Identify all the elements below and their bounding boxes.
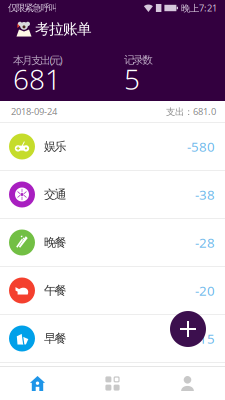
staticText: 考拉账单 [35,20,92,38]
staticText: 仅限紧急呼叫 [8,2,57,14]
staticText: 午餐 [44,283,67,298]
staticText: -38 [195,186,215,203]
staticText: 娱乐 [44,139,67,154]
button[interactable]: 早餐 [0,315,225,363]
staticText: 5 [124,60,140,98]
button[interactable]: 我的 [150,367,225,400]
staticText: -28 [195,234,215,251]
staticText: 本月支出(元) [13,53,63,67]
staticText: -15 [195,330,215,347]
button[interactable]: 首页 [0,367,75,400]
staticText: 早餐 [44,331,67,346]
staticText: 交通 [44,187,67,202]
button[interactable]: 晚餐 [0,219,225,267]
button[interactable]: 交通 [0,171,225,219]
staticText: 2018-09-24 [11,105,57,118]
staticText: -20 [195,282,215,299]
staticText: 晚上7:21 [181,2,217,14]
button[interactable]: 添加记账 [170,311,206,347]
button[interactable]: 娱乐 [0,123,225,171]
staticText: 支出：681.0 [166,105,216,118]
staticText: 晚餐 [44,235,67,250]
staticText: -580 [187,138,215,155]
staticText: 记录数 [124,53,153,66]
button[interactable]: 分类 [75,367,150,400]
button[interactable]: 午餐 [0,267,225,315]
staticText: 681 [13,60,61,98]
